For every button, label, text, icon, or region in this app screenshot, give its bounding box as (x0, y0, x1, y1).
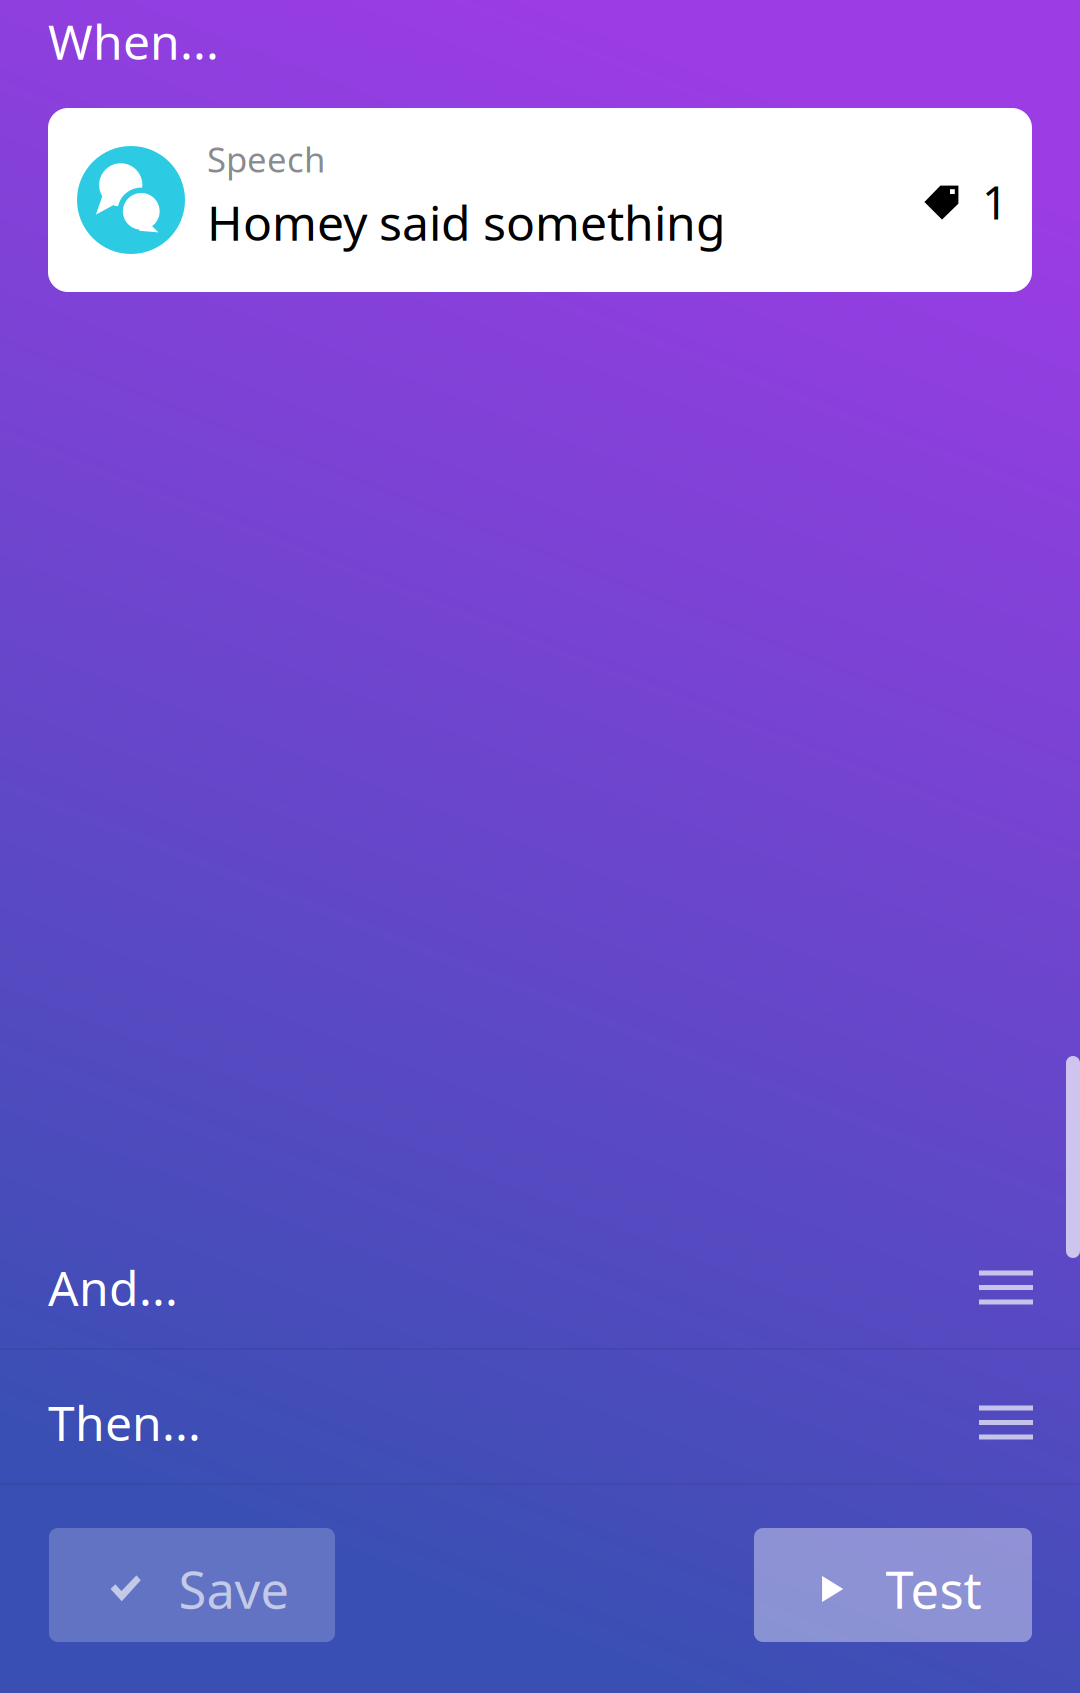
button[interactable]: And... (0, 1215, 1080, 1348)
staticText: When... (48, 9, 219, 73)
staticText: Test (885, 1555, 981, 1623)
staticText: 1 (982, 172, 1008, 232)
staticText: And... (48, 1256, 178, 1319)
button[interactable]: Save (49, 1528, 335, 1642)
staticText: Then... (48, 1391, 201, 1454)
button[interactable]: Reorder And... (958, 1232, 1054, 1342)
button[interactable]: Test (754, 1528, 1032, 1642)
staticText: Homey said something (207, 190, 726, 254)
staticText: Save (178, 1555, 289, 1623)
button[interactable]: Reorder Then... (958, 1367, 1054, 1477)
staticText: Speech (207, 136, 325, 182)
button[interactable]: Then... (0, 1350, 1080, 1483)
button[interactable]: Speech (48, 108, 1032, 292)
